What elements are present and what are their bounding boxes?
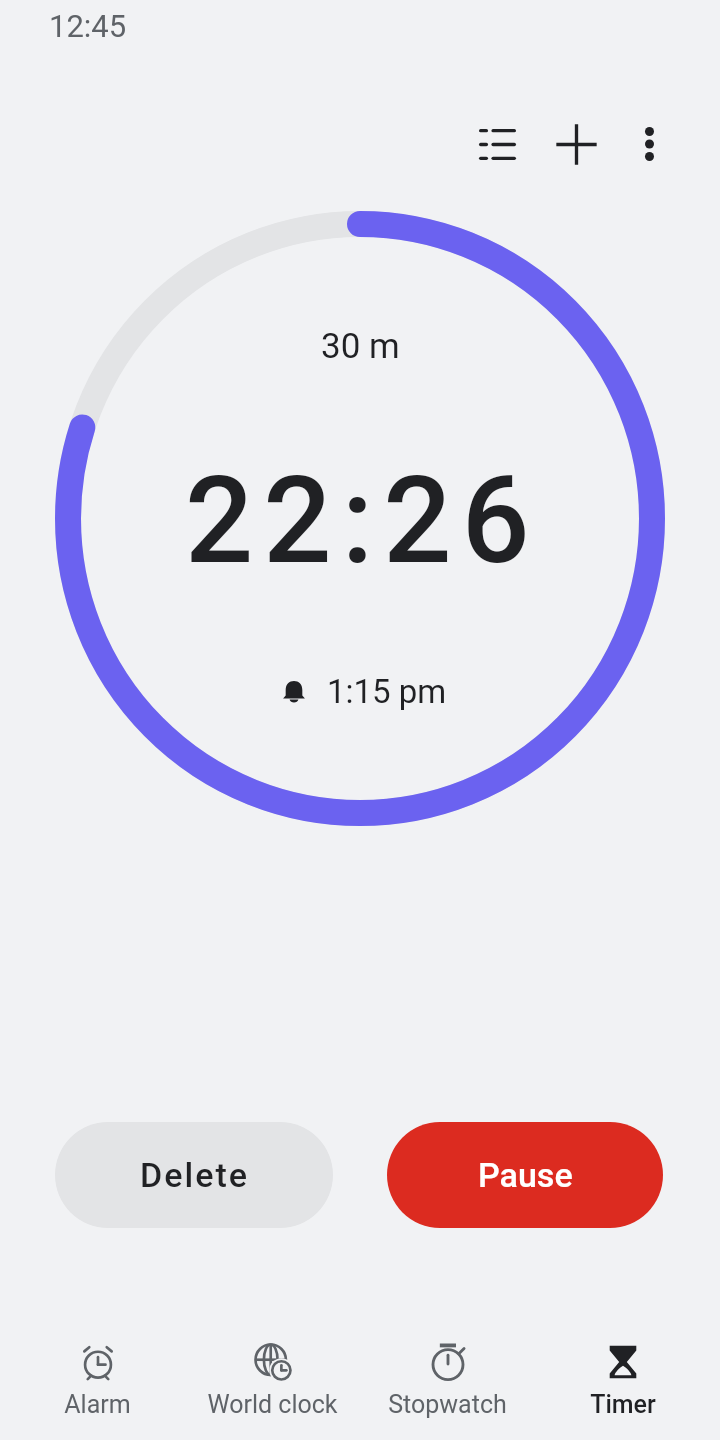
staticText: Pause — [478, 1155, 573, 1195]
button[interactable]: Timer — [535, 1308, 710, 1440]
button[interactable]: Delete — [55, 1122, 333, 1228]
staticText: Delete — [140, 1155, 249, 1195]
staticText: 1:15 pm — [327, 672, 447, 711]
button[interactable]: Add timer — [528, 96, 624, 192]
button[interactable]: Stopwatch — [360, 1308, 535, 1440]
staticText: Timer — [590, 1390, 656, 1419]
staticText: 22:26 — [185, 451, 540, 592]
button[interactable]: More options — [601, 96, 697, 192]
staticText: 30 m — [321, 326, 400, 367]
staticText: Stopwatch — [388, 1390, 507, 1419]
button[interactable]: Alarm — [10, 1308, 185, 1440]
button[interactable]: World clock — [185, 1308, 360, 1440]
staticText: 12:45 — [49, 8, 127, 44]
button[interactable]: Presets — [449, 96, 545, 192]
staticText: World clock — [207, 1390, 338, 1419]
staticText: Alarm — [64, 1390, 131, 1419]
button[interactable]: Pause — [387, 1122, 663, 1228]
